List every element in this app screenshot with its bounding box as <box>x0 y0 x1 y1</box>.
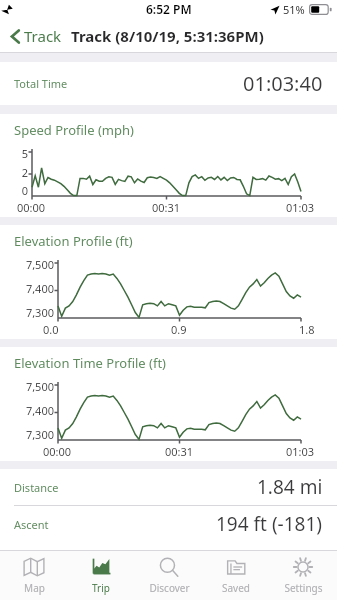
staticText: 00:31 <box>152 200 181 215</box>
staticText: 1.84 mi <box>257 474 323 500</box>
staticText: 0.9 <box>171 322 187 337</box>
staticText: 00:00 <box>17 200 46 215</box>
staticText: 00:00 <box>43 444 72 459</box>
staticText: Elevation Profile (ft) <box>14 232 133 250</box>
staticText: 0 <box>21 183 28 198</box>
staticText: Speed Profile (mph) <box>14 121 134 139</box>
staticText: 01:03 <box>286 200 315 215</box>
button[interactable]: Back <box>5 22 65 50</box>
staticText: 00:31 <box>165 444 194 459</box>
staticText: 7,300 <box>25 305 54 320</box>
button[interactable]: Map <box>1 551 67 600</box>
staticText: Ascent <box>14 517 49 532</box>
button[interactable]: Saved <box>203 551 269 600</box>
other: Back <box>8 29 23 44</box>
button[interactable]: Total Time <box>0 62 337 105</box>
staticText: Distance <box>14 480 59 495</box>
staticText: 01:03:40 <box>243 70 323 97</box>
staticText: 7,400 <box>25 403 54 418</box>
button[interactable]: Elevation Time Profile (ft) <box>0 347 337 461</box>
staticText: Map <box>24 581 45 595</box>
staticText: 194 ft (-181) <box>216 511 323 537</box>
staticText: Track (8/10/19, 5:31:36PM) <box>71 26 264 46</box>
button[interactable]: Ascent <box>0 506 337 542</box>
staticText: 7,500 <box>25 379 54 394</box>
button[interactable]: Elevation Profile (ft) <box>0 225 337 339</box>
button[interactable]: Speed Profile (mph) <box>0 114 337 217</box>
staticText: Settings <box>284 581 323 595</box>
staticText: 1.8 <box>299 322 315 337</box>
staticText: 7,400 <box>25 281 54 296</box>
staticText: 51% <box>283 2 305 17</box>
staticText: Total Time <box>14 76 68 91</box>
staticText: Saved <box>222 581 250 595</box>
button[interactable]: Discover <box>136 551 202 600</box>
staticText: Track <box>24 26 62 46</box>
staticText: Elevation Time Profile (ft) <box>14 354 167 372</box>
staticText: 5 <box>21 146 28 161</box>
staticText: 0.0 <box>43 322 59 337</box>
staticText: 01:03 <box>286 444 315 459</box>
button[interactable]: Trip <box>68 551 134 600</box>
button[interactable]: Settings <box>270 551 336 600</box>
staticText: 7,500 <box>25 257 54 272</box>
staticText: Trip <box>92 581 110 595</box>
button[interactable]: Distance <box>0 469 337 505</box>
staticText: Discover <box>149 581 190 595</box>
staticText: 6:52 PM <box>146 1 192 17</box>
staticText: 2 <box>21 165 28 180</box>
staticText: 7,300 <box>25 427 54 442</box>
